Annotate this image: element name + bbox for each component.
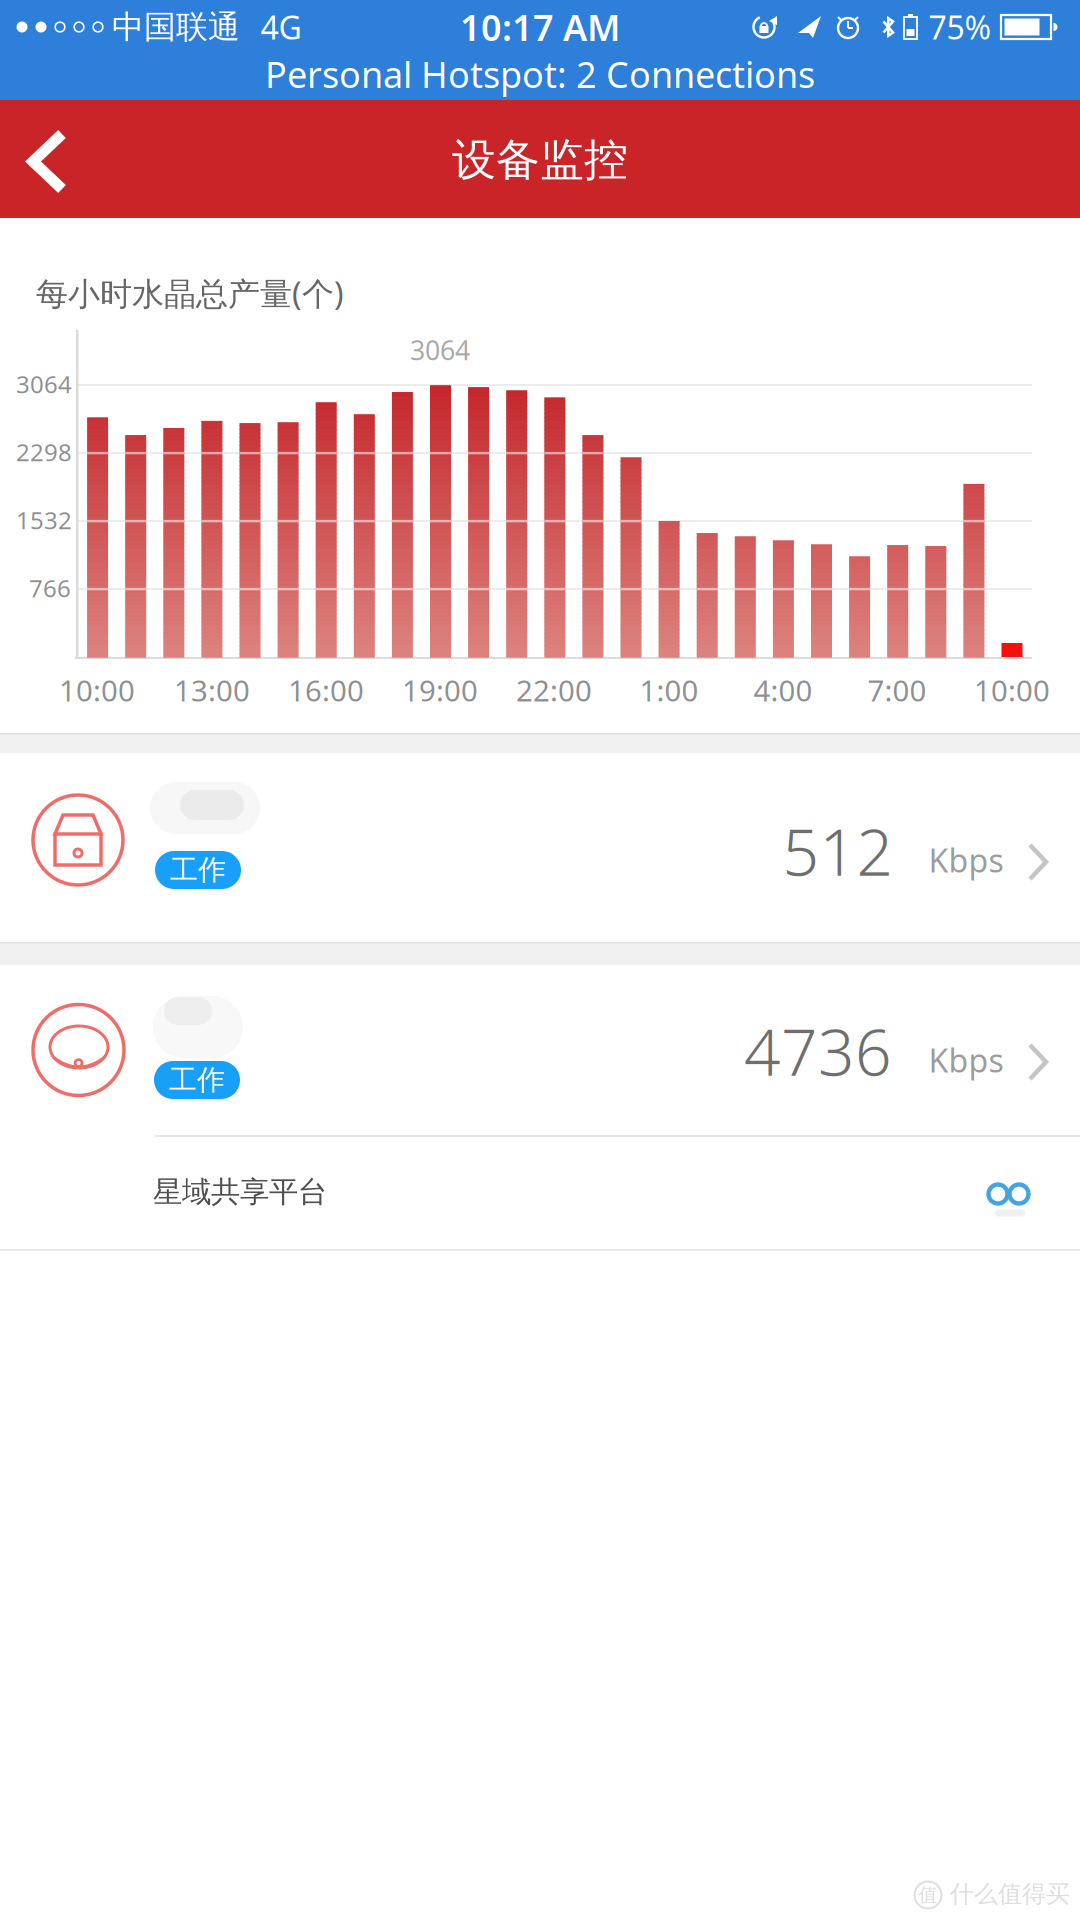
staticText: 3064 xyxy=(410,332,470,368)
staticText: 1:00 xyxy=(639,670,698,709)
button[interactable]: 星域共享平台 xyxy=(0,1135,1080,1250)
staticText: 工作 xyxy=(169,1063,225,1097)
staticText: 中国联通 xyxy=(112,7,240,47)
staticText: 13:00 xyxy=(174,670,250,709)
staticText: 512 xyxy=(782,808,893,893)
staticText: 7:00 xyxy=(867,670,926,709)
staticText: Kbps xyxy=(928,1039,1003,1081)
staticText: 什么值得买 xyxy=(950,1879,1070,1909)
button[interactable]: 工作 xyxy=(0,965,1080,1135)
staticText: 1532 xyxy=(16,504,72,536)
staticText: 75% xyxy=(928,6,991,48)
staticText: 22:00 xyxy=(516,670,592,709)
staticText: Kbps xyxy=(928,839,1003,881)
staticText: 10:17 AM xyxy=(460,3,620,51)
staticText: 766 xyxy=(29,572,71,604)
staticText: 值 xyxy=(918,1883,937,1906)
staticText: 星域共享平台 xyxy=(153,1174,327,1210)
staticText: 4G xyxy=(260,6,301,48)
staticText: 3064 xyxy=(16,368,72,400)
staticText: 19:00 xyxy=(402,670,478,709)
staticText: 2298 xyxy=(16,436,72,468)
staticText: 16:00 xyxy=(288,670,364,709)
staticText: 4:00 xyxy=(753,670,812,709)
staticText: 10:00 xyxy=(974,670,1050,709)
staticText: 10:00 xyxy=(59,670,135,709)
staticText: 4736 xyxy=(744,1008,892,1093)
staticText: 设备监控 xyxy=(452,133,628,187)
button[interactable]: 工作 xyxy=(0,753,1080,942)
staticText: Personal Hotspot: 2 Connections xyxy=(265,50,815,98)
staticText: 工作 xyxy=(170,853,226,887)
button[interactable]: Back xyxy=(0,120,90,202)
staticText: 每小时水晶总产量(个) xyxy=(36,272,344,314)
